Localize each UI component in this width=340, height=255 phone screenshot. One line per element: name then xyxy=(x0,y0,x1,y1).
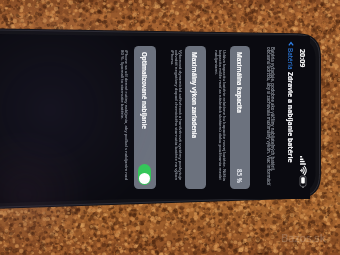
staticText: 20:09 xyxy=(298,49,308,68)
button[interactable]: Maximálny výkon zariadenia xyxy=(185,46,206,189)
staticText: Maximálna kapacita xyxy=(236,52,244,169)
other: Back xyxy=(288,41,294,47)
staticText: Bazos.sk xyxy=(281,230,326,245)
button[interactable]: Optimalizované nabíjanie xyxy=(138,164,151,185)
staticText: Batéria vyžaduje, podobne ako väčšiny na… xyxy=(265,47,276,188)
staticText: Batéria xyxy=(286,48,295,70)
staticText: iPhone sa učí denné rutiny nabíjania, ab… xyxy=(119,50,130,185)
button[interactable]: Maximálna kapacita xyxy=(230,46,250,189)
staticText: Výkonová dynamická softvérová a hardvéro… xyxy=(169,50,184,185)
staticText: Maximálny výkon zariadenia xyxy=(191,52,199,183)
staticText: 85 % xyxy=(236,169,244,183)
staticText: Optimalizované nabíjanie xyxy=(141,52,149,164)
button[interactable]: Back xyxy=(286,41,296,70)
staticText: Udáva kapacitu batérie relatívne ku kapa… xyxy=(213,50,228,185)
button[interactable]: Optimalizované nabíjanie xyxy=(134,46,156,189)
staticText: Zdravie a nabíjanie batérie xyxy=(286,72,295,163)
